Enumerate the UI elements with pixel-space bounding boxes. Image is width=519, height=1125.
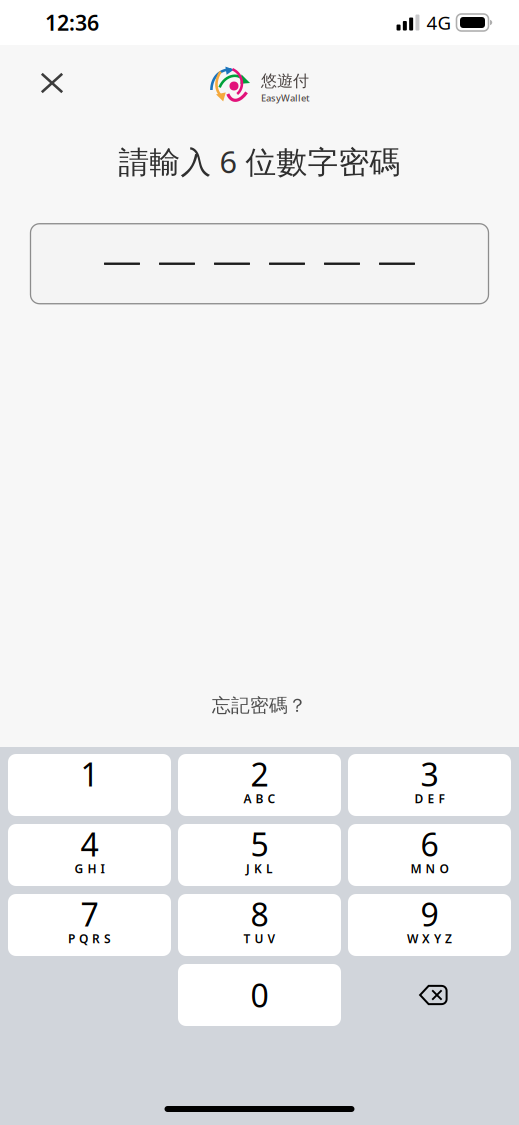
staticText: 1 (80, 753, 98, 795)
button[interactable]: Close (29, 63, 75, 107)
staticText: 忘記密碼？ (212, 694, 307, 717)
staticText: 4 (80, 823, 98, 865)
button[interactable]: 5 (178, 824, 341, 886)
button[interactable]: 8 (178, 894, 341, 956)
button[interactable]: 7 (8, 894, 171, 956)
staticText: 0 (250, 974, 268, 1016)
button[interactable]: 6 (348, 824, 511, 886)
staticText: 請輸入 6 位數字密碼 (118, 141, 400, 182)
staticText: A B C (243, 790, 275, 806)
staticText: J K L (246, 860, 273, 876)
staticText: 8 (250, 893, 268, 935)
staticText: 6 (420, 823, 438, 865)
button[interactable]: 2 (178, 754, 341, 816)
button[interactable]: 9 (348, 894, 511, 956)
staticText: 9 (420, 893, 438, 935)
staticText: 5 (250, 823, 268, 865)
staticText: W X Y Z (407, 930, 452, 946)
staticText: 2 (250, 753, 268, 795)
button[interactable]: 忘記密碼？ (198, 688, 321, 723)
staticText: 7 (80, 893, 98, 935)
button[interactable]: 1 (8, 754, 171, 816)
button[interactable]: 4 (8, 824, 171, 886)
button[interactable]: 0 (178, 964, 341, 1026)
staticText: 悠遊付 (261, 71, 309, 91)
staticText: P Q R S (68, 930, 111, 946)
staticText: 4G (426, 10, 451, 35)
button[interactable]: 3 (348, 754, 511, 816)
staticText: 3 (420, 753, 438, 795)
staticText: G H I (74, 860, 104, 876)
staticText: M N O (410, 860, 448, 876)
staticText: 12:36 (45, 8, 99, 37)
staticText: T U V (243, 930, 275, 946)
staticText: D E F (414, 790, 444, 806)
staticText: EasyWallet (261, 92, 310, 104)
button[interactable]: Delete (348, 964, 511, 1026)
